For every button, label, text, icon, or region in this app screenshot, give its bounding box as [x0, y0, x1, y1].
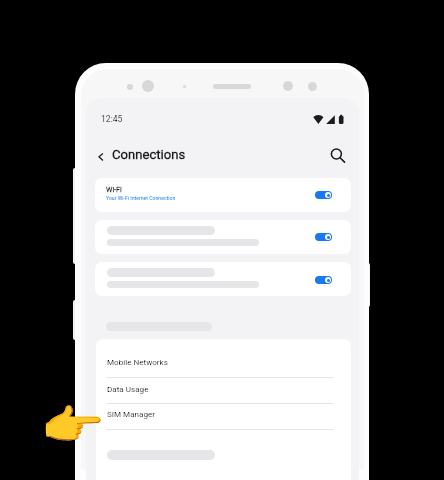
staticText: Connections [112, 147, 186, 162]
button[interactable]: Toggle [315, 191, 332, 199]
staticText: 👉 [40, 402, 105, 450]
staticText: 12:45 [101, 114, 123, 124]
button[interactable]: Toggle [315, 276, 332, 284]
staticText: Wi-Fi [106, 185, 122, 193]
button[interactable]: Search [328, 144, 348, 164]
staticText: Your Wi-Fi Internet Connection [106, 195, 176, 201]
button[interactable]: Toggle [315, 233, 332, 241]
button[interactable]: Back [93, 148, 109, 164]
button[interactable]: Wi-Fi [95, 178, 351, 212]
staticText: Data Usage [107, 384, 149, 393]
button[interactable]: Connections [112, 147, 186, 162]
staticText: SIM Manager [107, 409, 156, 418]
button[interactable] [95, 220, 351, 254]
button[interactable]: Mobile Networks [96, 339, 351, 378]
button[interactable]: Data Usage [96, 378, 351, 404]
button[interactable]: SIM Manager [96, 404, 351, 430]
button[interactable] [95, 262, 351, 296]
staticText: Mobile Networks [107, 357, 168, 366]
